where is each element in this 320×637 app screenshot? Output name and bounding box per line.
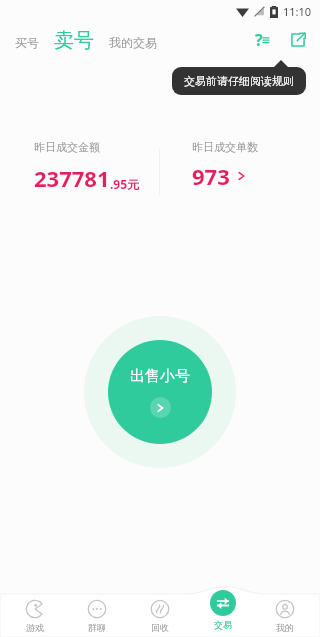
staticText: 买号 (15, 35, 39, 50)
button[interactable]: 出售小号 (108, 340, 212, 444)
button[interactable]: 群聊 (69, 593, 125, 637)
staticText: 卖号 (54, 28, 94, 53)
staticText: 昨日成交单数 (192, 140, 258, 154)
button[interactable]: 我的交易 (106, 32, 160, 53)
staticText: 11:10 (283, 4, 312, 19)
button[interactable]: 我的 (257, 593, 313, 637)
button[interactable]: 回收 (132, 593, 188, 637)
staticText: 我的 (276, 622, 294, 633)
staticText: 交易前请仔细阅读规则 (184, 74, 294, 88)
staticText: 回收 (151, 622, 169, 633)
staticText: 237781 (34, 163, 110, 193)
staticText: 我的交易 (109, 35, 157, 50)
staticText: 游戏 (26, 622, 44, 633)
button[interactable]: 交易前请仔细阅读规则 (172, 67, 306, 95)
button[interactable]: Help rules (250, 28, 274, 52)
button[interactable]: 游戏 (7, 593, 63, 637)
staticText: .95元 (110, 176, 140, 192)
staticText: 973 (192, 161, 230, 191)
staticText: ? (255, 29, 263, 51)
button[interactable]: 交易 (195, 593, 251, 637)
button[interactable]: 买号 (12, 32, 42, 53)
staticText: 交易 (214, 619, 232, 630)
button[interactable]: 昨日成交单数 (160, 140, 320, 191)
staticText: 出售小号 (130, 367, 190, 386)
staticText: 群聊 (88, 622, 106, 633)
button[interactable]: 卖号 (51, 28, 97, 53)
button[interactable]: Share (286, 28, 310, 52)
staticText: 昨日成交金额 (34, 140, 100, 154)
